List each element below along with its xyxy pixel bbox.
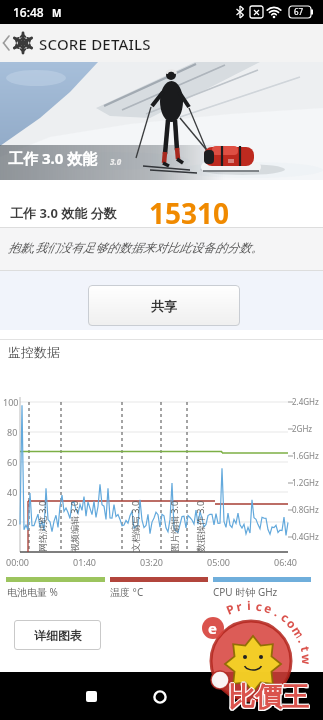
button[interactable]: 详细图表 [14,620,101,650]
staticText: 1.2GHz [292,477,319,488]
staticText: CPU 时钟 GHz [213,585,278,599]
staticText: 比價王 [228,681,309,715]
staticText: 16:48 [13,4,44,20]
staticText: 3.0 [110,156,122,167]
staticText: 03:20 [140,556,164,568]
staticText: 电池电量 % [7,585,58,599]
staticText: 1.6GHz [292,450,319,461]
staticText: . [297,635,311,644]
staticText: e [263,599,275,615]
staticText: t [299,645,314,653]
staticText: 2.4GHz [292,396,319,407]
staticText: 20 [7,516,18,528]
staticText: o [285,615,301,631]
staticText: 工作 3.0 效能 分数 [10,204,117,222]
staticText: r [235,597,243,612]
staticText: 监控数据 [8,344,60,360]
button[interactable] [82,687,101,706]
staticText: 网络浏览 3.0 [36,500,48,552]
staticText: . [273,604,283,618]
staticText: 05:00 [207,556,231,568]
button[interactable]: SCORE DETAILS [0,24,323,62]
staticText: 00:00 [6,556,30,568]
button[interactable] [151,688,169,706]
staticText: c [279,609,293,624]
staticText: e [208,618,217,638]
staticText: 比價王 [227,680,308,714]
staticText: 文档编写 3.0 [129,500,141,552]
staticText: i [247,597,251,611]
staticText: w [301,654,315,664]
staticText: 15310 [149,194,230,232]
button[interactable]: 共享 [88,285,240,326]
staticText: SCORE DETAILS [39,34,151,54]
staticText: 数据操作 3.0 [194,500,206,552]
staticText: 比價王 [227,681,308,715]
staticText: 2GHz [292,423,313,434]
staticText: 比價王 [229,681,310,715]
staticText: 共享 [151,298,177,314]
staticText: 图片编辑 3.0 [168,500,180,552]
staticText: c [255,598,264,612]
staticText: 抱歉,我们没有足够的数据来对比此设备的分数。 [8,239,264,255]
staticText: 0.8GHz [292,504,319,515]
staticText: 比價王 [228,679,309,713]
staticText: 详细图表 [34,628,82,643]
staticText: 工作 3.0 效能 [8,148,98,168]
staticText: 06:40 [274,556,298,568]
staticText: 60 [7,456,18,468]
staticText: 比價王 [228,680,309,714]
staticText: 80 [7,426,18,438]
staticText: 温度 °C [110,585,144,599]
staticText: M [52,6,62,20]
staticText: 67 [294,6,304,17]
staticText: 0.4GHz [292,531,319,542]
staticText: 01:40 [73,556,97,568]
staticText: 40 [7,486,18,498]
staticText: P [224,600,236,616]
staticText: 100 [3,396,19,408]
staticText: m [290,623,308,639]
staticText: 比價王 [229,680,310,714]
staticText: 视频编辑 3.0 [68,500,80,552]
